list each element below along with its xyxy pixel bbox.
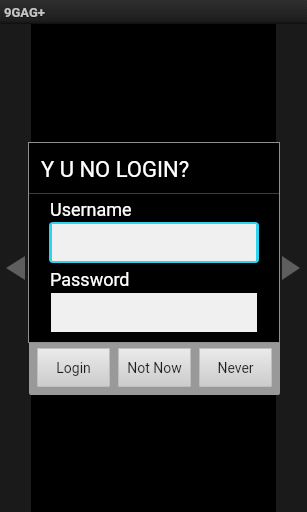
- staticText: 9GAG+: [4, 5, 45, 20]
- button[interactable]: Never: [199, 348, 272, 387]
- staticText: Username: [50, 199, 132, 220]
- button[interactable]: Login: [37, 348, 110, 387]
- staticText: Password: [50, 269, 130, 290]
- staticText: 9GAG+: [4, 6, 45, 21]
- staticText: Never: [217, 360, 254, 376]
- button[interactable]: Previous: [6, 256, 25, 280]
- staticText: Y U NO LOGIN?: [41, 157, 190, 183]
- staticText: Not Now: [127, 360, 182, 376]
- button[interactable]: Not Now: [118, 348, 191, 387]
- button[interactable]: Next: [282, 256, 300, 280]
- staticText: Login: [56, 360, 91, 376]
